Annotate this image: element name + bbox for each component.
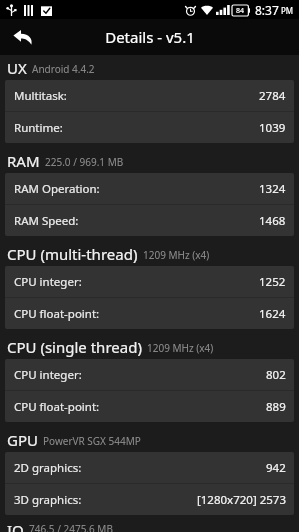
- button[interactable]: Back: [6, 20, 40, 54]
- staticText: 1209 MHz (x4): [147, 341, 214, 355]
- staticText: IO: [7, 520, 24, 532]
- button[interactable]: 2D graphics:: [5, 452, 294, 483]
- staticText: 1624: [259, 306, 286, 322]
- staticText: Details - v5.1: [105, 27, 195, 47]
- staticText: 1209 MHz (x4): [143, 248, 210, 262]
- button[interactable]: RAM Operation:: [5, 173, 294, 204]
- button[interactable]: 3D graphics:: [5, 484, 294, 515]
- staticText: CPU integer:: [14, 367, 82, 383]
- staticText: 225.0 / 969.1 MB: [45, 155, 124, 169]
- button[interactable]: Runtime:: [5, 112, 294, 143]
- staticText: Multitask:: [14, 88, 67, 104]
- staticText: RAM Speed:: [14, 213, 79, 229]
- button[interactable]: RAM Speed:: [5, 205, 294, 236]
- staticText: RAM Operation:: [14, 181, 100, 197]
- staticText: 2784: [259, 88, 286, 104]
- staticText: CPU integer:: [14, 274, 82, 290]
- staticText: GPU: [7, 430, 38, 450]
- staticText: PM: [281, 5, 294, 16]
- staticText: [1280x720] 2573: [197, 492, 286, 508]
- button[interactable]: CPU integer:: [5, 266, 294, 297]
- button[interactable]: CPU float-point:: [5, 391, 294, 422]
- staticText: 8:37: [255, 2, 279, 18]
- staticText: 746.5 / 2475.6 MB: [29, 522, 113, 532]
- staticText: 1252: [259, 274, 286, 290]
- staticText: Android 4.4.2: [32, 62, 95, 76]
- staticText: CPU float-point:: [14, 306, 100, 322]
- staticText: 2D graphics:: [14, 460, 82, 476]
- button[interactable]: Multitask:: [5, 80, 294, 111]
- button[interactable]: CPU integer:: [5, 359, 294, 390]
- staticText: 3D graphics:: [14, 492, 82, 508]
- staticText: 84: [236, 6, 245, 16]
- staticText: RAM: [7, 151, 40, 171]
- button[interactable]: CPU float-point:: [5, 298, 294, 329]
- staticText: PowerVR SGX 544MP: [43, 434, 141, 448]
- staticText: 1324: [259, 181, 286, 197]
- staticText: 889: [266, 399, 286, 415]
- staticText: 1039: [259, 120, 286, 136]
- staticText: UX: [7, 58, 27, 78]
- staticText: 942: [266, 460, 286, 476]
- staticText: CPU (multi-thread): [7, 244, 138, 264]
- staticText: CPU (single thread): [7, 337, 142, 357]
- staticText: 802: [266, 367, 286, 383]
- staticText: CPU float-point:: [14, 399, 100, 415]
- staticText: 1468: [259, 213, 286, 229]
- staticText: Runtime:: [14, 120, 63, 136]
